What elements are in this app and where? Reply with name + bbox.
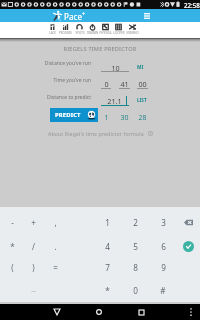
button[interactable]: Backspace [178, 212, 199, 232]
staticText: 28 [138, 113, 147, 123]
button[interactable]: Open navigation menu [139, 9, 155, 22]
staticText: SOMEHOW [126, 31, 139, 35]
staticText: 41 [120, 79, 129, 89]
staticText: - [11, 217, 14, 228]
button[interactable]: / [20, 235, 46, 257]
staticText: 00 [138, 79, 147, 89]
button[interactable]: . [42, 235, 68, 257]
button[interactable]: 8 [122, 256, 148, 278]
staticText: LACE [49, 31, 56, 35]
staticText: 1 [104, 113, 109, 123]
button[interactable]: ... [20, 279, 46, 301]
staticText: 0 [133, 285, 138, 296]
staticText: * [105, 285, 110, 296]
staticText: / [32, 241, 35, 252]
button[interactable]: , [42, 211, 68, 233]
button[interactable]: Recent apps [131, 304, 151, 320]
staticText: Time you've run [53, 77, 91, 84]
button[interactable]: * [94, 279, 120, 301]
staticText: 2 [133, 217, 138, 228]
staticText: LOOPER [113, 31, 125, 35]
staticText: ( [11, 262, 14, 273]
button[interactable]: Done [178, 236, 199, 256]
staticText: = [53, 262, 58, 273]
button[interactable]: Looper [112, 24, 125, 36]
button[interactable]: 2 [122, 211, 148, 233]
button[interactable]: Home [89, 304, 109, 320]
staticText: RIEGELS TIME PREDICTOR [0, 45, 200, 53]
staticText: 10 [111, 63, 120, 73]
button[interactable]: 7 [94, 256, 120, 278]
staticText: 0 [104, 79, 109, 89]
button[interactable]: Physical [99, 24, 112, 36]
staticText: + [82, 10, 86, 17]
button[interactable]: - [0, 211, 25, 233]
button[interactable]: Training [86, 24, 99, 36]
button[interactable]: ) [20, 256, 46, 278]
staticText: MI [137, 64, 144, 71]
staticText: PROGRESS [59, 31, 72, 35]
button[interactable]: PREDICT [50, 108, 98, 122]
button[interactable]: 1 [94, 211, 120, 233]
staticText: + [31, 217, 36, 228]
button[interactable]: Lace [46, 24, 59, 36]
button[interactable]: = [42, 256, 68, 278]
button[interactable]: ( [0, 256, 25, 278]
button[interactable]: 4 [94, 235, 120, 257]
button[interactable]: 6 [150, 235, 176, 257]
staticText: ... [31, 286, 36, 294]
button[interactable]: 5 [122, 235, 148, 257]
staticText: 21.1 [107, 96, 122, 106]
button[interactable]: About Riegel's time predictor formula [48, 130, 153, 137]
staticText: . [54, 241, 57, 252]
button[interactable]: Somehow [126, 24, 139, 36]
staticText: TRAINING [86, 31, 99, 35]
staticText: 22:58 [184, 1, 200, 9]
button[interactable]: More options [185, 304, 197, 320]
staticText: 3 [161, 217, 166, 228]
button[interactable]: 3 [150, 211, 176, 233]
button[interactable]: 9 [150, 256, 176, 278]
staticText: 30 [120, 113, 129, 123]
staticText: Distance you've run [44, 60, 91, 67]
button[interactable]: # [150, 279, 176, 301]
staticText: ) [32, 262, 35, 273]
staticText: SPLITS [75, 31, 85, 35]
button[interactable]: + [20, 211, 46, 233]
staticText: , [54, 217, 57, 228]
button[interactable]: 0 [122, 279, 148, 301]
button[interactable]: Splits [73, 24, 86, 36]
staticText: 5 [133, 241, 138, 252]
staticText: * [10, 241, 15, 252]
staticText: 1 [105, 217, 110, 228]
staticText: PREDICT [55, 111, 81, 119]
staticText: 8 [133, 262, 138, 273]
staticText: Pace [64, 11, 83, 22]
button[interactable]: Back [47, 304, 67, 320]
staticText: 4 [105, 241, 110, 252]
staticText: About Riegel's time predictor formula [48, 130, 144, 137]
staticText: Distance to predict [46, 94, 91, 101]
staticText: 9 [161, 262, 166, 273]
button[interactable]: * [0, 235, 25, 257]
staticText: LIST [137, 97, 147, 103]
staticText: 6 [161, 241, 166, 252]
staticText: # [160, 285, 166, 296]
staticText: PHYSICAL [99, 31, 112, 35]
button[interactable]: Progress [59, 24, 72, 36]
staticText: 7 [105, 262, 110, 273]
